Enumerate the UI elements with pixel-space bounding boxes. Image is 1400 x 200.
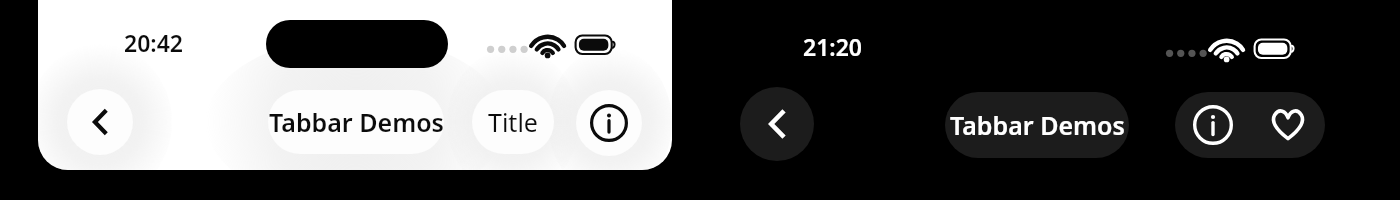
staticText: 21:20: [803, 31, 862, 62]
button[interactable]: Tabbar Demos: [945, 92, 1129, 158]
staticText: Tabbar Demos: [269, 105, 444, 139]
button[interactable]: Back: [740, 87, 814, 161]
staticText: Tabbar Demos: [950, 108, 1125, 142]
button[interactable]: Tabbar Demos: [268, 90, 444, 154]
staticText: 20:42: [124, 27, 183, 58]
staticText: Title: [488, 105, 538, 139]
button[interactable]: Info: [1175, 92, 1250, 158]
button[interactable]: Favorite: [1250, 92, 1325, 158]
button[interactable]: Info: [576, 90, 642, 156]
button[interactable]: Title: [472, 90, 554, 154]
button[interactable]: Back: [67, 89, 133, 155]
